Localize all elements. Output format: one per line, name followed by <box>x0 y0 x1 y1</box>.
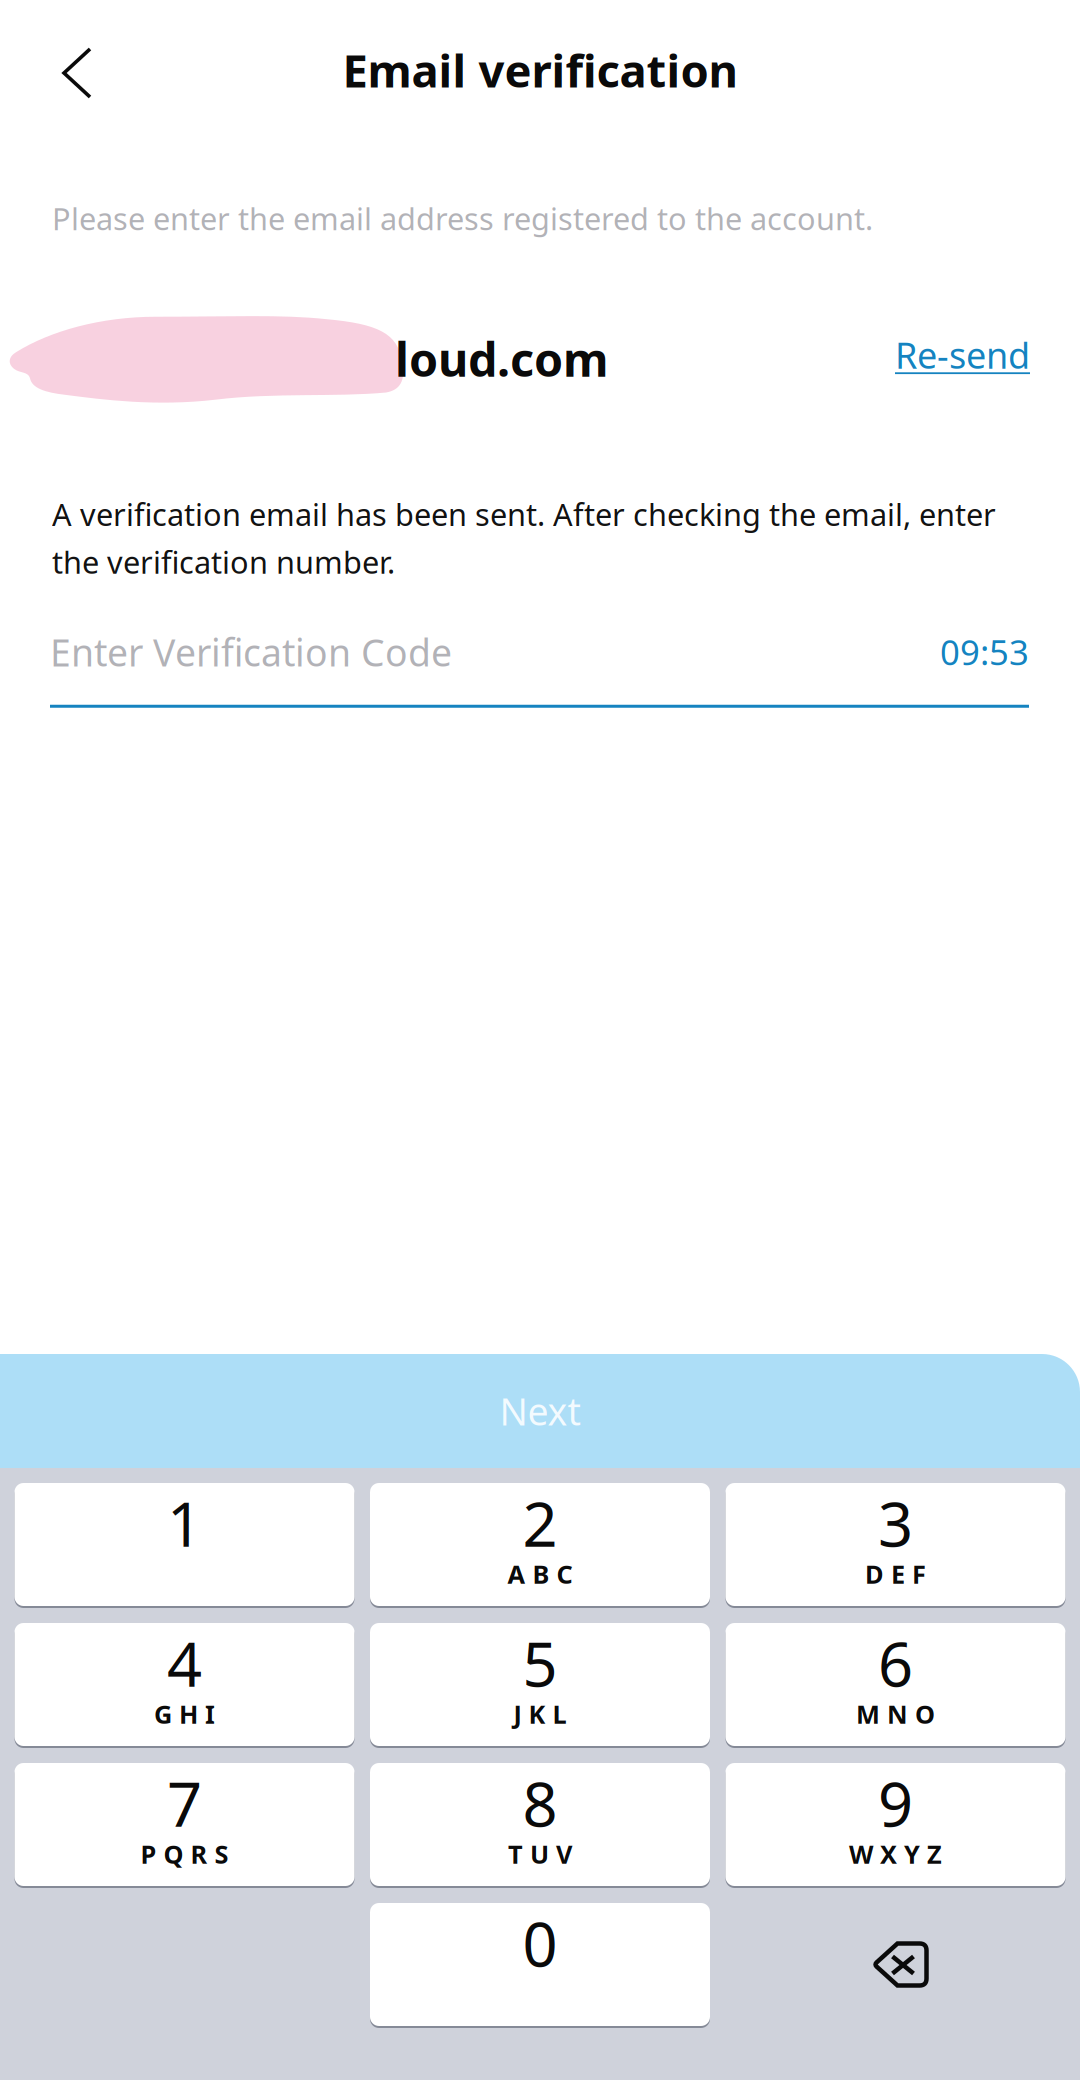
staticText: 8 <box>522 1762 557 1844</box>
button[interactable]: Delete <box>725 1903 1065 2026</box>
staticText: 5 <box>522 1622 557 1704</box>
staticText: 1 <box>167 1482 202 1564</box>
staticText: 4 <box>167 1622 202 1704</box>
button[interactable]: 3 <box>725 1483 1065 1606</box>
button[interactable]: 8 <box>370 1763 710 1886</box>
button[interactable]: 2 <box>370 1483 710 1606</box>
staticText: 3 <box>878 1482 913 1564</box>
button[interactable]: Back <box>29 25 125 121</box>
staticText: G H I <box>154 1697 215 1731</box>
staticText: A verification email has been sent. Afte… <box>52 494 996 582</box>
staticText: Re-send <box>895 331 1030 379</box>
staticText: 9 <box>878 1762 913 1844</box>
staticText: T U V <box>508 1837 572 1871</box>
button[interactable]: 9 <box>725 1763 1065 1886</box>
staticText: M N O <box>856 1697 935 1731</box>
button[interactable]: 5 <box>370 1623 710 1746</box>
staticText: 6 <box>878 1622 913 1704</box>
button[interactable]: 1 <box>14 1483 354 1606</box>
staticText: J K L <box>513 1697 566 1731</box>
staticText: Please enter the email address registere… <box>52 198 873 239</box>
staticText: 0 <box>522 1902 557 1984</box>
staticText: P Q R S <box>140 1837 228 1871</box>
staticText: 2 <box>522 1482 557 1564</box>
button[interactable]: Next <box>0 1352 1080 1468</box>
button[interactable]: 7 <box>14 1763 354 1886</box>
staticText: D E F <box>865 1557 926 1591</box>
staticText: loud.com <box>395 328 609 390</box>
button[interactable]: 0 <box>370 1903 710 2026</box>
button[interactable]: 4 <box>14 1623 354 1746</box>
staticText: A B C <box>507 1557 572 1591</box>
button[interactable]: Enter Verification Code <box>0 627 1080 708</box>
staticText: Email verification <box>342 40 737 100</box>
staticText: 7 <box>167 1762 202 1844</box>
button[interactable]: Re-send <box>895 329 1030 389</box>
staticText: Enter Verification Code <box>50 627 452 677</box>
staticText: Next <box>499 1386 580 1436</box>
staticText: W X Y Z <box>849 1837 942 1871</box>
button[interactable]: 6 <box>725 1623 1065 1746</box>
staticText: 09:53 <box>940 629 1029 675</box>
